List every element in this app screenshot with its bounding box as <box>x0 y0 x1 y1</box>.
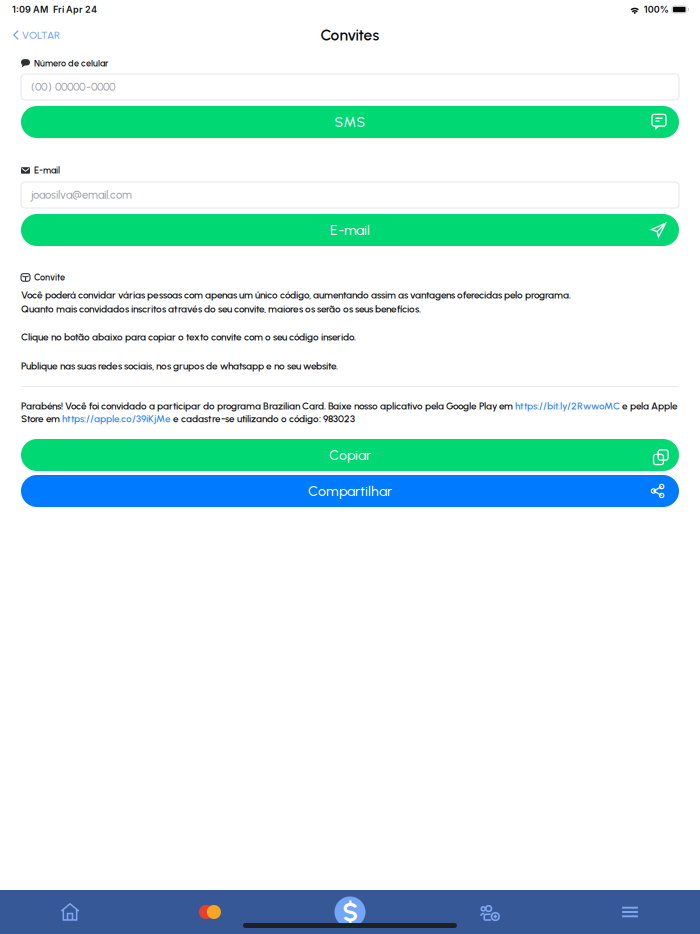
staticText: E-mail <box>330 221 370 238</box>
staticText: Publique nas suas redes sociais, nos gru… <box>21 360 338 372</box>
button[interactable]: Convites <box>420 890 560 934</box>
button[interactable]: Início <box>0 890 140 934</box>
staticText: Fri Apr 24 <box>53 4 97 15</box>
staticText: 100% <box>644 4 669 15</box>
staticText: (00) 00000-0000 <box>31 80 116 94</box>
staticText: Clique no botão abaixo para copiar o tex… <box>21 331 356 343</box>
button[interactable]: Menu <box>560 890 700 934</box>
staticText: e pela Apple <box>620 400 678 412</box>
staticText: Quanto mais convidados inscritos através… <box>21 303 421 315</box>
staticText: Você poderá convidar várias pessoas com … <box>21 289 571 301</box>
button[interactable]: Compartilhar <box>21 475 679 507</box>
button[interactable]: Pagamentos <box>280 890 420 934</box>
staticText: Parabéns! Você foi convidado a participa… <box>21 400 515 412</box>
staticText: SMS <box>334 113 365 130</box>
button[interactable]: Copiar <box>21 439 679 471</box>
staticText: Compartilhar <box>308 482 392 499</box>
staticText: VOLTAR <box>22 29 60 41</box>
staticText: 1:09 AM <box>12 4 48 15</box>
staticText: Copiar <box>329 446 371 463</box>
button[interactable]: E-mail <box>21 214 679 246</box>
button[interactable]: SMS <box>21 106 679 138</box>
button[interactable]: VOLTAR <box>13 25 60 45</box>
staticText: $ <box>342 897 357 927</box>
staticText: Número de celular <box>34 58 108 69</box>
staticText: E-mail <box>34 165 60 176</box>
button[interactable]: Cartão <box>140 890 280 934</box>
staticText: https://bit.ly/2RwwoMC <box>515 400 620 412</box>
staticText: e cadastre-se utilizando o código: 98302… <box>171 413 355 425</box>
staticText: Store em <box>21 413 62 425</box>
staticText: https://apple.co/39iKjMe <box>62 413 171 425</box>
staticText: Convites <box>320 26 379 44</box>
staticText: Convite <box>34 272 65 283</box>
staticText: joaosilva@email.com <box>31 188 132 202</box>
